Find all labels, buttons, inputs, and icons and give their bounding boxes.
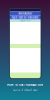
staticText: HOW TO USE TRANSLATION xyxy=(7,83,43,86)
button[interactable]: Translator xyxy=(9,11,41,15)
staticText: English - French xyxy=(20,20,31,22)
button[interactable]: Type text to translate xyxy=(9,15,41,19)
button[interactable]: English - French xyxy=(9,19,41,22)
staticText: نحوه استفاده از ترجمه xyxy=(12,88,37,91)
staticText: Translator xyxy=(18,12,32,15)
staticText: Type text to translate xyxy=(12,16,39,19)
